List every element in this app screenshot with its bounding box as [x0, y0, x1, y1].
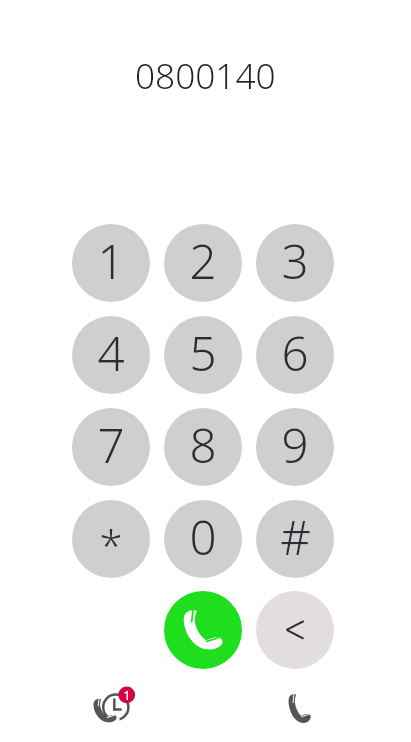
staticText: 0800140: [135, 51, 276, 99]
button[interactable]: 7: [72, 408, 150, 486]
button[interactable]: Recent calls: [88, 682, 144, 730]
staticText: 6: [281, 320, 309, 385]
staticText: 9: [281, 412, 309, 477]
button[interactable]: 0: [164, 500, 242, 578]
staticText: *: [99, 516, 123, 573]
staticText: 2: [189, 228, 217, 293]
button[interactable]: 5: [164, 316, 242, 394]
button[interactable]: Dialpad: [286, 691, 313, 725]
staticText: 1: [97, 228, 125, 293]
staticText: 5: [189, 320, 217, 385]
staticText: 7: [97, 412, 125, 477]
button[interactable]: 2: [164, 224, 242, 302]
button[interactable]: #: [256, 500, 334, 578]
staticText: #: [280, 504, 311, 569]
staticText: 8: [189, 412, 217, 477]
button[interactable]: Call: [164, 591, 242, 669]
button[interactable]: 1: [72, 224, 150, 302]
button[interactable]: 3: [256, 224, 334, 302]
staticText: 1: [123, 686, 131, 703]
button[interactable]: 8: [164, 408, 242, 486]
button[interactable]: 4: [72, 316, 150, 394]
button[interactable]: *: [72, 500, 150, 578]
button[interactable]: 6: [256, 316, 334, 394]
staticText: 3: [281, 228, 309, 293]
staticText: 4: [97, 320, 125, 385]
button[interactable]: 9: [256, 408, 334, 486]
button[interactable]: Backspace: [256, 591, 334, 669]
staticText: 0: [189, 504, 217, 569]
